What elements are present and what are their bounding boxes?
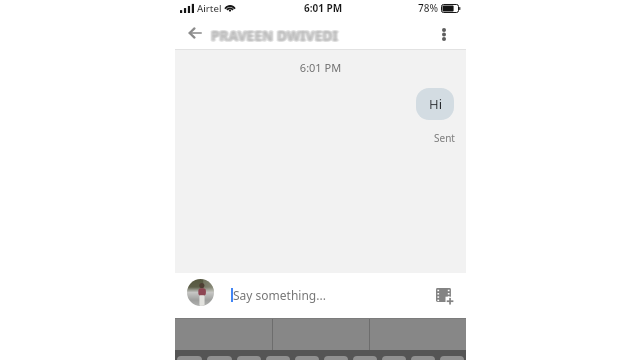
button[interactable]: Hi — [416, 88, 454, 120]
button[interactable] — [207, 356, 232, 360]
staticText: PRAVEEN DWIVEDI — [212, 26, 339, 44]
staticText: PRAVEEN DWIVEDI — [211, 27, 338, 45]
staticText: PRAVEEN DWIVEDI — [210, 28, 337, 46]
staticText: Say something... — [233, 287, 326, 303]
button[interactable] — [440, 356, 464, 360]
staticText: Hi — [429, 95, 442, 113]
button[interactable] — [411, 356, 435, 360]
staticText: 6:01 PM — [304, 1, 343, 15]
staticText: PRAVEEN DWIVEDI — [211, 28, 338, 46]
staticText: Airtel — [197, 2, 222, 15]
button[interactable]: Say something... — [231, 273, 430, 317]
staticText: PRAVEEN DWIVEDI — [213, 27, 340, 45]
button[interactable] — [324, 356, 348, 360]
button[interactable]: More options — [429, 22, 459, 50]
button[interactable] — [177, 356, 202, 360]
button[interactable] — [353, 356, 377, 360]
staticText: PRAVEEN DWIVEDI — [209, 27, 336, 45]
staticText: PRAVEEN DWIVEDI — [212, 27, 339, 45]
staticText: 6:01 PM — [175, 60, 466, 75]
button[interactable]: Back — [175, 22, 206, 50]
button[interactable] — [237, 356, 261, 360]
button[interactable] — [382, 356, 406, 360]
staticText: PRAVEEN DWIVEDI — [211, 26, 338, 44]
button[interactable]: Profile photo — [187, 279, 214, 306]
staticText: Sent — [434, 131, 455, 145]
button[interactable] — [295, 356, 319, 360]
staticText: PRAVEEN DWIVEDI — [212, 28, 339, 46]
staticText: PRAVEEN DWIVEDI — [210, 27, 337, 45]
staticText: PRAVEEN DWIVEDI — [210, 26, 337, 44]
staticText: 78% — [418, 1, 438, 15]
button[interactable] — [266, 356, 290, 360]
button[interactable]: Add media — [430, 280, 460, 310]
